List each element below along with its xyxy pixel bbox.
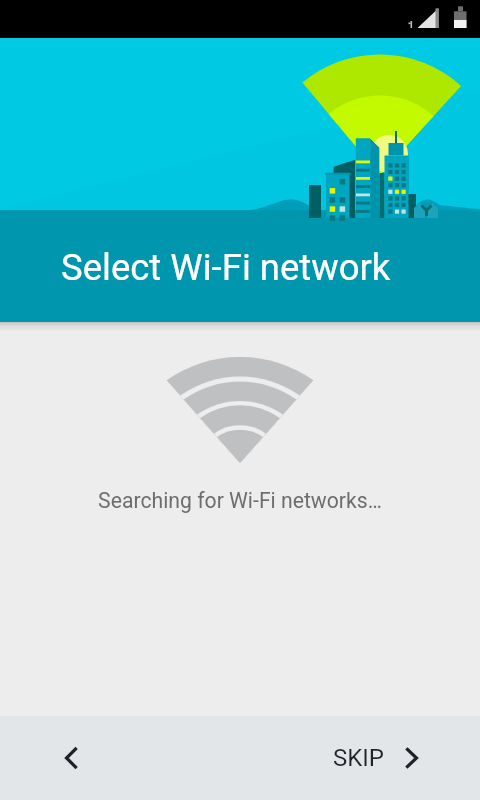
staticText: Searching for Wi-Fi networks…	[98, 488, 382, 513]
button[interactable]: Back	[44, 730, 100, 786]
staticText: Select Wi-Fi network	[61, 246, 391, 289]
button[interactable]: SKIP	[327, 730, 425, 786]
staticText: SKIP	[333, 744, 384, 772]
